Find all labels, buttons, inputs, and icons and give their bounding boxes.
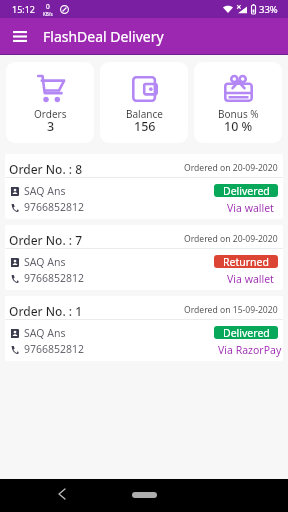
staticText: 9766852812 bbox=[24, 342, 85, 356]
staticText: Order No. : 7 bbox=[9, 232, 83, 248]
button[interactable]: Orders bbox=[6, 62, 94, 143]
staticText: Via wallet bbox=[227, 201, 274, 215]
staticText: Order No. : 8 bbox=[9, 161, 83, 177]
button[interactable]: Balance bbox=[100, 62, 188, 143]
button[interactable]: Back bbox=[53, 485, 71, 503]
staticText: Ordered on 15-09-2020 bbox=[184, 304, 278, 316]
button[interactable]: Bonus % bbox=[194, 62, 282, 143]
staticText: KB/s bbox=[43, 11, 53, 17]
staticText: 3 bbox=[47, 118, 55, 135]
staticText: 9766852812 bbox=[24, 271, 85, 285]
button[interactable]: Delivered bbox=[214, 184, 278, 197]
staticText: FlashDeal Delivery bbox=[43, 27, 164, 46]
staticText: Orders bbox=[34, 107, 67, 121]
staticText: Ordered on 20-09-2020 bbox=[184, 162, 278, 174]
button[interactable]: Open navigation drawer bbox=[0, 18, 40, 55]
button[interactable]: Order No. : 7 bbox=[5, 225, 283, 290]
staticText: Bonus % bbox=[218, 107, 259, 121]
staticText: 10 % bbox=[224, 118, 253, 135]
staticText: Balance bbox=[126, 107, 163, 121]
button[interactable]: Order No. : 8 bbox=[5, 154, 283, 219]
staticText: Returned bbox=[223, 255, 269, 268]
staticText: SAQ Ans bbox=[24, 184, 66, 198]
button[interactable]: Home bbox=[132, 492, 157, 498]
button[interactable]: Delivered bbox=[214, 326, 278, 339]
staticText: SAQ Ans bbox=[24, 326, 66, 340]
staticText: SAQ Ans bbox=[24, 255, 66, 269]
staticText: 15:12 bbox=[12, 3, 36, 15]
staticText: Order No. : 1 bbox=[9, 303, 83, 319]
button[interactable]: Returned bbox=[214, 255, 278, 268]
staticText: Ordered on 20-09-2020 bbox=[184, 233, 278, 245]
staticText: 0 bbox=[46, 2, 50, 11]
staticText: 33% bbox=[259, 3, 278, 16]
staticText: Via RazorPay bbox=[218, 343, 282, 357]
staticText: Delivered bbox=[223, 184, 270, 197]
staticText: Via wallet bbox=[227, 272, 274, 286]
staticText: 156 bbox=[134, 118, 156, 135]
button[interactable]: Order No. : 1 bbox=[5, 296, 283, 361]
staticText: Delivered bbox=[223, 326, 270, 339]
staticText: 9766852812 bbox=[24, 200, 85, 214]
